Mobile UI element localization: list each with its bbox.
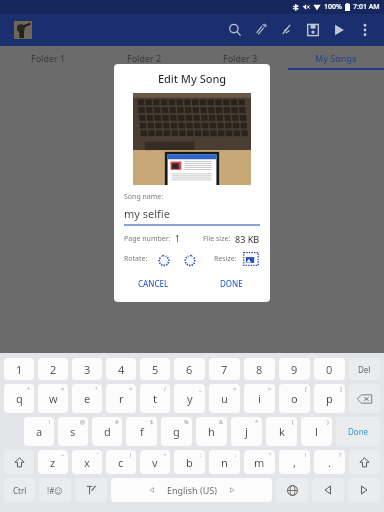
button[interactable]: English (US) — [111, 478, 272, 502]
button[interactable]: . — [314, 450, 345, 474]
button[interactable]: Folder 1 — [0, 46, 96, 70]
button[interactable]: 8 — [244, 358, 275, 380]
button[interactable]: e — [72, 384, 102, 413]
staticText: Done — [348, 426, 369, 437]
button[interactable]: Folder 3 — [192, 46, 288, 70]
button[interactable]: v — [140, 450, 170, 474]
staticText: ÷ — [95, 385, 99, 392]
staticText: 7:01 AM — [353, 2, 380, 12]
button[interactable]: b — [174, 450, 205, 474]
button[interactable]: Folder 2 — [96, 46, 192, 70]
button[interactable]: m — [244, 450, 275, 474]
button[interactable]: a — [24, 417, 54, 446]
button[interactable]: Resize — [242, 250, 260, 268]
staticText: Ctrl — [13, 485, 27, 496]
button[interactable]: j — [231, 417, 262, 446]
staticText: my selfie — [124, 206, 170, 221]
staticText: 100% — [324, 2, 342, 12]
button[interactable]: Move left — [312, 478, 344, 502]
button[interactable]: d — [92, 417, 122, 446]
staticText: g — [173, 424, 180, 439]
button[interactable]: i — [244, 384, 275, 413]
button[interactable]: z — [38, 450, 68, 474]
button[interactable]: 9 — [279, 358, 310, 380]
button[interactable]: x — [72, 450, 102, 474]
staticText: ~ — [61, 451, 65, 458]
staticText: w — [49, 391, 58, 406]
button[interactable]: DONE — [192, 275, 270, 292]
staticText: k — [279, 424, 285, 439]
staticText: [ — [305, 385, 307, 392]
button[interactable]: 4 — [106, 358, 136, 380]
staticText: 3 — [84, 362, 91, 377]
staticText: DONE — [220, 278, 243, 289]
staticText: 9 — [291, 362, 298, 377]
button[interactable]: Handwriting — [75, 478, 107, 502]
staticText: ? — [339, 451, 342, 458]
staticText: ! — [49, 418, 51, 425]
button[interactable]: u — [209, 384, 240, 413]
staticText: ( — [292, 418, 294, 425]
button[interactable]: n — [209, 450, 240, 474]
button[interactable]: !#☺ — [39, 478, 71, 502]
staticText: y — [187, 391, 193, 406]
button[interactable]: CANCEL — [114, 275, 192, 292]
staticText: a — [36, 424, 43, 439]
button[interactable]: g — [161, 417, 192, 446]
staticText: o — [291, 391, 298, 406]
button[interactable]: 1 — [4, 358, 34, 380]
button[interactable]: Rotate right — [181, 251, 198, 268]
staticText: , — [293, 455, 296, 470]
staticText: English (US) — [167, 484, 217, 496]
button[interactable]: More options — [352, 17, 378, 43]
button[interactable]: Save — [300, 17, 326, 43]
button[interactable]: 5 — [140, 358, 170, 380]
button[interactable]: 2 — [38, 358, 68, 380]
button[interactable]: q — [4, 384, 34, 413]
button[interactable]: 0 — [314, 358, 345, 380]
button[interactable]: w — [38, 384, 68, 413]
button[interactable]: My Songs — [288, 46, 384, 70]
button[interactable]: Ctrl — [4, 478, 35, 502]
button[interactable]: Add sharp — [248, 17, 274, 43]
button[interactable]: y — [174, 384, 205, 413]
button[interactable]: h — [196, 417, 227, 446]
button[interactable]: 6 — [174, 358, 205, 380]
button[interactable]: Search — [222, 17, 248, 43]
staticText: ) — [327, 418, 329, 425]
button[interactable]: c — [106, 450, 136, 474]
button[interactable]: , — [279, 450, 310, 474]
button[interactable]: Play — [326, 17, 352, 43]
staticText: Folder 1 — [31, 52, 66, 64]
button[interactable]: Backspace — [349, 384, 380, 413]
button[interactable]: 3 — [72, 358, 102, 380]
staticText: • — [164, 451, 167, 458]
button[interactable]: l — [301, 417, 332, 446]
button[interactable]: f — [126, 417, 157, 446]
staticText: Folder 2 — [127, 52, 162, 64]
button[interactable]: Shift — [4, 450, 34, 474]
button[interactable]: k — [266, 417, 297, 446]
staticText: x — [84, 455, 90, 470]
button[interactable]: o — [279, 384, 310, 413]
button[interactable]: Add flat — [274, 17, 300, 43]
button[interactable]: Done — [336, 417, 380, 446]
button[interactable]: Del — [349, 358, 380, 380]
button[interactable]: Rotate left — [155, 251, 172, 268]
button[interactable]: t — [140, 384, 170, 413]
button[interactable]: s — [58, 417, 88, 446]
button[interactable]: App icon — [14, 21, 32, 39]
button[interactable]: Move right — [348, 478, 380, 502]
staticText: e — [84, 391, 91, 406]
staticText: 0 — [326, 362, 333, 377]
staticText: / — [164, 385, 167, 392]
staticText: $ — [150, 418, 154, 425]
button[interactable]: 7 — [209, 358, 240, 380]
staticText: q — [16, 391, 23, 406]
staticText: # — [115, 418, 119, 425]
button[interactable]: Shift — [349, 450, 380, 474]
button[interactable]: p — [314, 384, 345, 413]
button[interactable]: r — [106, 384, 136, 413]
button[interactable]: Change language — [276, 478, 308, 502]
staticText: My Songs — [315, 52, 357, 64]
